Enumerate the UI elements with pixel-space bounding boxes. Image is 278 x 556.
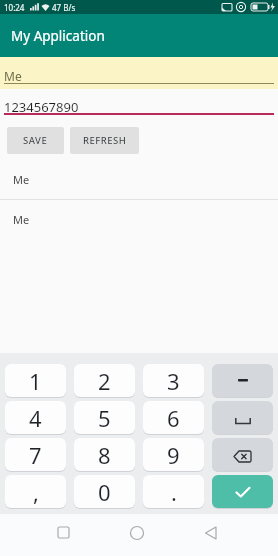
staticText: 1 xyxy=(29,366,42,396)
button[interactable]: 4 xyxy=(5,401,66,434)
button[interactable] xyxy=(185,514,278,556)
button[interactable]: REFRESH xyxy=(70,127,139,154)
button[interactable]: 0 xyxy=(74,475,135,508)
staticText: 9 xyxy=(167,440,180,470)
staticText: 2 xyxy=(98,366,111,396)
staticText: Me xyxy=(13,212,30,227)
staticText: 4 xyxy=(29,403,42,433)
staticText: , xyxy=(33,477,39,507)
staticText: 7 xyxy=(29,440,42,470)
staticText: 1234567890 xyxy=(4,98,79,116)
button[interactable] xyxy=(212,401,273,434)
staticText: Me xyxy=(4,68,22,84)
staticText: Me xyxy=(13,172,30,187)
staticText: 6 xyxy=(167,403,180,433)
button[interactable]: Me xyxy=(0,200,278,239)
staticText: . xyxy=(171,477,177,507)
button[interactable]: 9 xyxy=(143,438,204,471)
button[interactable]: 5 xyxy=(74,401,135,434)
button[interactable]: 6 xyxy=(143,401,204,434)
button[interactable]: 7 xyxy=(5,438,66,471)
staticText: REFRESH xyxy=(83,134,127,147)
staticText: 47 B/s xyxy=(52,2,76,13)
button[interactable]: SAVE xyxy=(7,127,64,154)
button[interactable]: Me xyxy=(0,160,278,199)
button[interactable]: 1 xyxy=(5,364,66,397)
button[interactable] xyxy=(92,514,185,556)
staticText: 8 xyxy=(98,440,111,470)
button[interactable] xyxy=(212,364,273,397)
button[interactable] xyxy=(0,514,92,556)
staticText: 5 xyxy=(98,403,111,433)
button[interactable]: 8 xyxy=(74,438,135,471)
button[interactable]: 2 xyxy=(74,364,135,397)
staticText: 3 xyxy=(167,366,180,396)
staticText: SAVE xyxy=(23,134,48,147)
button[interactable] xyxy=(212,475,273,508)
button[interactable]: 3 xyxy=(143,364,204,397)
staticText: 10:24 xyxy=(4,2,25,13)
button[interactable]: 1234567890 xyxy=(0,89,278,116)
staticText: 0 xyxy=(98,477,111,507)
button[interactable]: , xyxy=(5,475,66,508)
button[interactable]: Me xyxy=(0,57,278,89)
staticText: My Application xyxy=(11,27,105,45)
button[interactable] xyxy=(212,438,273,471)
button[interactable]: . xyxy=(143,475,204,508)
